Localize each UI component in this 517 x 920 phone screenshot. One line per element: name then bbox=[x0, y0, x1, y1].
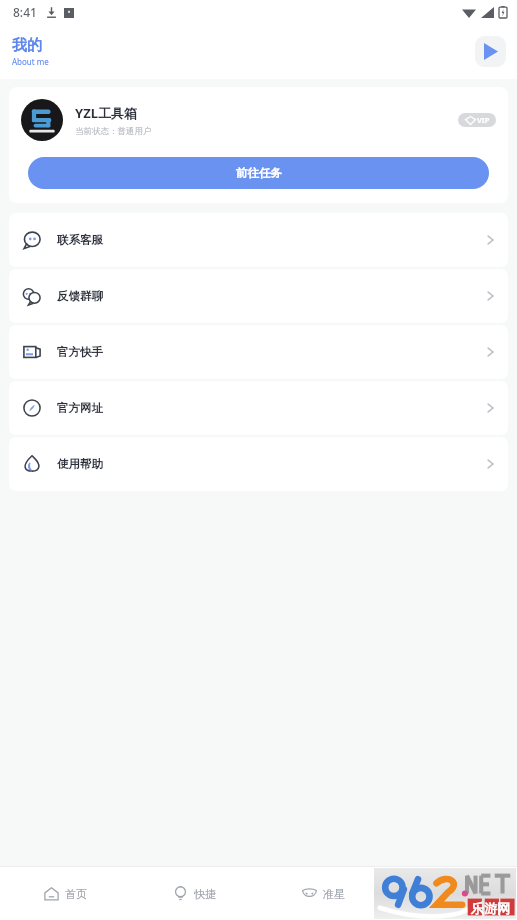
staticText: 官方网址 bbox=[57, 401, 103, 415]
button[interactable]: 使用帮助 bbox=[9, 437, 508, 491]
button[interactable]: 快捷 bbox=[130, 867, 259, 920]
button[interactable]: 首页 bbox=[0, 867, 130, 920]
button[interactable]: 联系客服 bbox=[9, 213, 508, 267]
button[interactable]: 我的 bbox=[388, 867, 517, 920]
staticText: YZL工具箱 bbox=[75, 104, 137, 122]
button[interactable]: 反馈群聊 bbox=[9, 269, 508, 323]
staticText: 乐游网 bbox=[471, 900, 510, 916]
staticText: 我的 bbox=[452, 887, 474, 901]
staticText: 使用帮助 bbox=[57, 457, 103, 471]
staticText: 反馈群聊 bbox=[57, 289, 103, 303]
button[interactable]: 官方网址 bbox=[9, 381, 508, 435]
staticText: VIP bbox=[477, 115, 490, 125]
button[interactable]: 官方快手 bbox=[9, 325, 508, 379]
staticText: 前往任务 bbox=[236, 166, 282, 180]
staticText: 官方快手 bbox=[57, 345, 103, 359]
button[interactable]: Open app store bbox=[475, 36, 506, 67]
staticText: 快捷 bbox=[194, 887, 216, 901]
staticText: About me bbox=[12, 56, 49, 67]
staticText: 联系客服 bbox=[57, 233, 103, 247]
staticText: 8:41 bbox=[13, 4, 37, 20]
staticText: 首页 bbox=[65, 887, 87, 901]
staticText: 当前状态：普通用户 bbox=[75, 126, 152, 137]
button[interactable]: 准星 bbox=[259, 867, 388, 920]
staticText: 准星 bbox=[323, 887, 345, 901]
button[interactable]: 前往任务 bbox=[28, 157, 489, 189]
staticText: 我的 bbox=[12, 36, 42, 55]
